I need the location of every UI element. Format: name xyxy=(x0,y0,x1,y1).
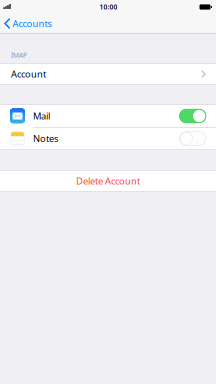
staticText: Mail xyxy=(33,110,50,122)
staticText: Account xyxy=(11,68,46,80)
button[interactable]: Delete Account xyxy=(0,170,216,191)
staticText: 10:00 xyxy=(99,3,117,11)
staticText: Delete Account xyxy=(76,175,140,187)
button[interactable]: Accounts xyxy=(0,14,57,33)
staticText: IMAP xyxy=(11,51,27,59)
button[interactable]: Notes xyxy=(0,127,216,149)
button[interactable]: Account xyxy=(0,63,216,84)
staticText: Accounts xyxy=(12,17,51,30)
staticText: Notes xyxy=(33,132,58,145)
button[interactable]: Mail xyxy=(0,105,216,127)
